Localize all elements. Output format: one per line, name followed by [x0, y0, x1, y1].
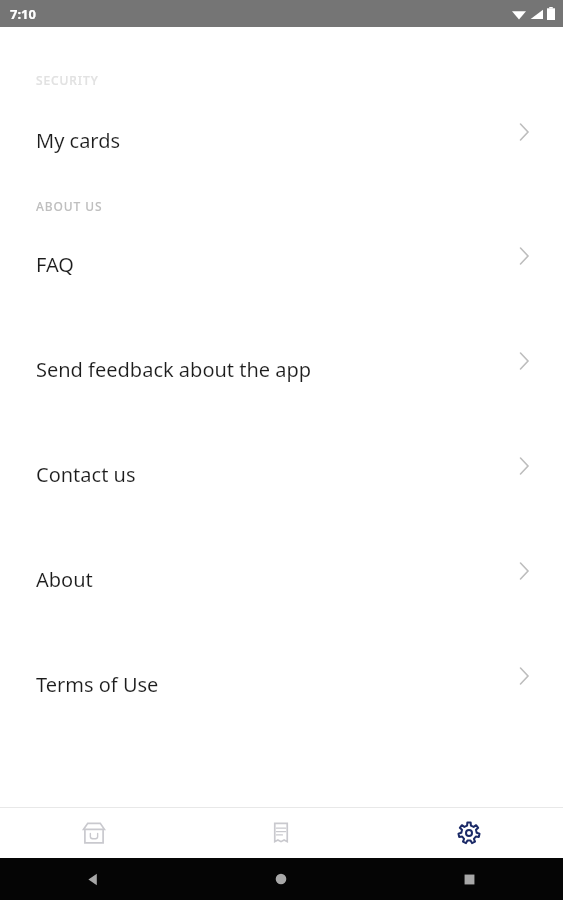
- staticText: SECURITY: [36, 72, 99, 88]
- staticText: 7:10: [10, 5, 36, 23]
- button[interactable]: My cards: [0, 79, 563, 166]
- staticText: Contact us: [36, 461, 136, 488]
- button[interactable]: Terms of Use: [0, 605, 563, 710]
- staticText: Terms of Use: [36, 671, 159, 698]
- button[interactable]: Contact us: [0, 395, 563, 500]
- button[interactable]: Recent apps: [375, 858, 563, 900]
- button[interactable]: Home: [187, 858, 375, 900]
- button[interactable]: Shop: [0, 808, 187, 858]
- staticText: About: [36, 566, 93, 593]
- button[interactable]: Send feedback about the app: [0, 290, 563, 395]
- button[interactable]: Receipts: [187, 808, 375, 858]
- button[interactable]: Back: [0, 858, 187, 900]
- staticText: ABOUT US: [36, 198, 103, 214]
- staticText: My cards: [36, 127, 121, 154]
- button[interactable]: FAQ: [0, 228, 563, 290]
- staticText: Send feedback about the app: [36, 356, 312, 383]
- staticText: FAQ: [36, 251, 74, 278]
- button[interactable]: Settings: [375, 808, 563, 858]
- button[interactable]: About: [0, 500, 563, 605]
